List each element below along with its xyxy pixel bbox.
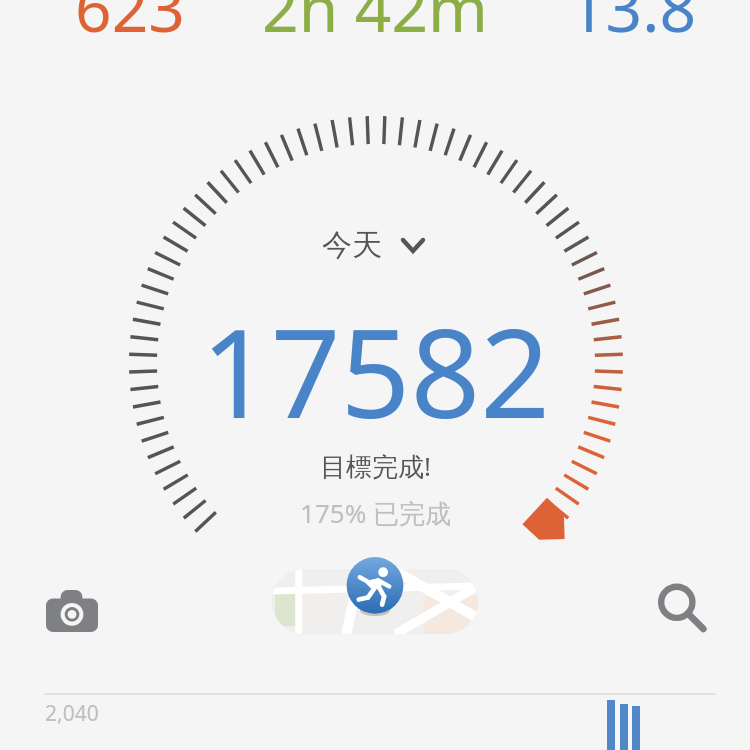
staticText: 2h 42m — [262, 0, 488, 38]
staticText: 13.8 — [569, 0, 696, 38]
staticText: 623 — [75, 0, 185, 38]
staticText: 目標完成! — [320, 448, 431, 484]
staticText: 175% 已完成 — [300, 495, 451, 531]
button[interactable]: Camera — [33, 572, 111, 650]
staticText: 17582 — [201, 288, 550, 420]
button[interactable]: Search — [643, 569, 721, 647]
button[interactable]: 13.8 — [542, 0, 722, 38]
staticText: 今天 — [322, 226, 382, 264]
button[interactable]: 17582 — [168, 288, 583, 420]
button[interactable]: 623 — [38, 0, 222, 38]
staticText: 2,040 — [45, 699, 99, 728]
button[interactable]: 2h 42m — [254, 0, 496, 38]
button[interactable]: Map — [272, 569, 478, 634]
button[interactable]: 今天 — [310, 220, 442, 268]
